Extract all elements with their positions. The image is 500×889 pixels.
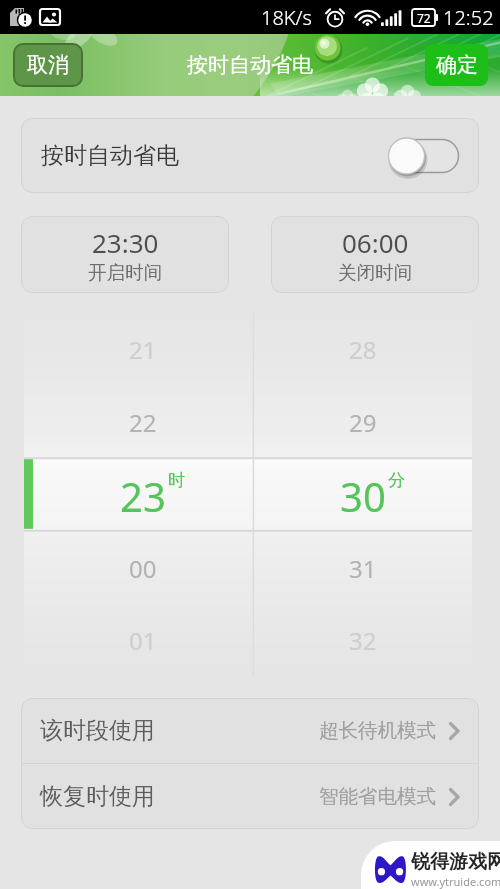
button[interactable]: 23:30 [21, 216, 229, 293]
staticText: www.ytruide.com [411, 874, 500, 889]
staticText: 06:00 [342, 225, 409, 260]
staticText: 该时段使用 [40, 716, 155, 745]
staticText: 23:30 [92, 225, 159, 260]
staticText: 取消 [27, 52, 69, 78]
staticText: 关闭时间 [338, 261, 412, 284]
staticText: 锐得游戏网 [411, 850, 500, 874]
button[interactable]: 恢复时使用 [21, 764, 479, 829]
staticText: 超长待机模式 [319, 718, 436, 743]
staticText: 分 [388, 470, 405, 491]
staticText: 按时自动省电 [187, 52, 313, 78]
button[interactable]: 按时自动省电 [21, 118, 479, 193]
staticText: 开启时间 [88, 261, 162, 284]
staticText: 18K/s [261, 4, 312, 31]
staticText: 30 [340, 469, 386, 523]
button[interactable]: 该时段使用 [21, 698, 479, 763]
staticText: 恢复时使用 [40, 782, 155, 811]
staticText: 29 [349, 406, 377, 439]
staticText: 28 [349, 333, 377, 366]
staticText: 01 [129, 624, 157, 657]
staticText: 21 [129, 333, 157, 366]
staticText: 时 [168, 470, 185, 491]
staticText: 确定 [436, 52, 478, 78]
staticText: 按时自动省电 [41, 141, 179, 170]
button[interactable]: 06:00 [271, 216, 479, 293]
staticText: 72 [417, 10, 431, 26]
button[interactable]: 取消 [13, 43, 83, 87]
staticText: 智能省电模式 [319, 784, 436, 809]
staticText: 23 [120, 469, 166, 523]
staticText: 31 [349, 552, 377, 585]
staticText: 12:52 [443, 4, 494, 31]
staticText: 22 [129, 406, 157, 439]
button[interactable]: 确定 [425, 44, 488, 86]
staticText: 00 [129, 552, 157, 585]
staticText: 32 [349, 624, 377, 657]
